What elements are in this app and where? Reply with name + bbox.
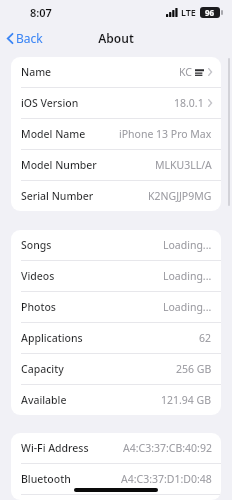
button[interactable]: Photos — [11, 292, 221, 322]
staticText: Loading... — [163, 238, 212, 252]
staticText: A4:C3:37:CB:40:92 — [123, 441, 212, 455]
staticText: A4:C3:37:D1:D0:48 — [121, 472, 212, 486]
staticText: LTE — [181, 6, 196, 18]
staticText: Videos — [21, 269, 55, 283]
staticText: Back — [16, 30, 43, 46]
staticText: Name — [21, 65, 52, 79]
staticText: 121.94 GB — [161, 393, 212, 407]
staticText: 18.0.1 — [174, 96, 204, 110]
staticText: Loading... — [163, 300, 212, 314]
staticText: Bluetooth — [21, 472, 71, 486]
button[interactable]: Serial Number — [11, 181, 221, 211]
button[interactable]: Capacity — [11, 354, 221, 384]
button[interactable]: Name — [11, 57, 221, 87]
staticText: MLKU3LL/A — [155, 158, 212, 172]
staticText: 8:07 — [30, 5, 52, 20]
button[interactable]: Songs — [11, 230, 221, 260]
staticText: 256 GB — [176, 362, 212, 376]
staticText: Songs — [21, 238, 52, 252]
staticText: Wi-Fi Address — [21, 441, 89, 455]
staticText: K2NGJJP9MG — [148, 189, 212, 203]
other: Profile badge — [195, 68, 204, 77]
button[interactable]: Bluetooth — [11, 464, 221, 494]
staticText: Model Number — [21, 158, 97, 172]
button[interactable]: Applications — [11, 323, 221, 353]
staticText: iOS Version — [21, 96, 79, 110]
button[interactable]: Model Number — [11, 150, 221, 180]
staticText: Available — [21, 393, 67, 407]
staticText: Photos — [21, 300, 56, 314]
button[interactable]: Available — [11, 385, 221, 415]
staticText: 62 — [199, 331, 212, 345]
staticText: Serial Number — [21, 189, 94, 203]
button[interactable]: Back — [0, 26, 51, 50]
button[interactable]: Videos — [11, 261, 221, 291]
staticText: iPhone 13 Pro Max — [119, 127, 212, 141]
staticText: KC — [179, 65, 192, 79]
staticText: About — [98, 30, 134, 46]
button[interactable]: iOS Version — [11, 88, 221, 118]
staticText: Capacity — [21, 362, 64, 376]
staticText: Loading... — [163, 269, 212, 283]
button[interactable]: Model Name — [11, 119, 221, 149]
button[interactable]: Wi-Fi Address — [11, 433, 221, 463]
staticText: 96 — [205, 7, 215, 18]
staticText: Applications — [21, 331, 83, 345]
staticText: Model Name — [21, 127, 86, 141]
